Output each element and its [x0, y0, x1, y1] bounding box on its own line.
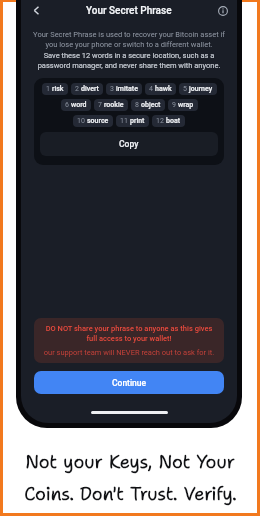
button[interactable]: 11 [120, 115, 145, 127]
staticText: imitate [116, 85, 138, 93]
button[interactable]: Continue [34, 371, 224, 394]
staticText: source [87, 117, 109, 125]
button[interactable]: 2 [75, 83, 99, 95]
button[interactable]: 8 [135, 99, 161, 111]
staticText: 1 [46, 85, 50, 93]
staticText: object [141, 101, 161, 109]
staticText: Your Secret Phrase is used to recover yo… [29, 30, 229, 48]
staticText: Not your Keys, Not Your [25, 449, 235, 474]
staticText: 12 [156, 117, 164, 125]
staticText: 11 [120, 117, 128, 125]
staticText: hawk [155, 85, 172, 93]
staticText: Save these 12 words in a secure location… [29, 51, 229, 69]
staticText: Continue [112, 378, 147, 388]
staticText: divert [81, 85, 99, 93]
staticText: 5 [183, 85, 187, 93]
staticText: wrap [178, 101, 194, 109]
staticText: boat [166, 117, 181, 125]
staticText: journey [189, 85, 213, 93]
staticText: print [130, 117, 145, 125]
staticText: 6 [65, 101, 69, 109]
staticText: Your Secret Phrase [86, 5, 172, 17]
staticText: 2 [75, 85, 79, 93]
button[interactable]: 3 [110, 83, 138, 95]
button[interactable]: 6 [65, 99, 87, 111]
button[interactable]: 4 [149, 83, 172, 95]
staticText: 4 [149, 85, 153, 93]
staticText: 8 [135, 101, 139, 109]
staticText: rookie [104, 101, 124, 109]
staticText: Coins. Don't Trust. Verify. [24, 481, 237, 506]
button[interactable]: Back [29, 3, 44, 18]
button[interactable]: Copy [40, 132, 218, 156]
staticText: risk [52, 85, 64, 93]
staticText: Copy [119, 139, 139, 149]
staticText: 7 [98, 101, 102, 109]
staticText: word [71, 101, 87, 109]
button[interactable]: Info [215, 3, 230, 18]
button[interactable]: 12 [156, 115, 181, 127]
button[interactable]: 7 [98, 99, 124, 111]
button[interactable]: 1 [46, 83, 64, 95]
staticText: 10 [77, 117, 85, 125]
staticText: 9 [172, 101, 176, 109]
button[interactable]: 5 [183, 83, 213, 95]
button[interactable]: 9 [172, 99, 194, 111]
staticText: our support team will NEVER reach out to… [40, 348, 218, 357]
staticText: 3 [110, 85, 114, 93]
button[interactable]: 10 [77, 115, 109, 127]
staticText: DO NOT share your phrase to anyone as th… [40, 324, 218, 343]
